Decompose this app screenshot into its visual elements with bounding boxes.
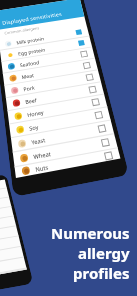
staticText: Pork: [23, 84, 36, 92]
staticText: Milk protein: [16, 35, 45, 45]
button[interactable]: Meat: [3, 59, 98, 85]
staticText: Honey: [27, 108, 44, 118]
button[interactable]: Honey: [7, 94, 107, 123]
staticText: Meat: [21, 71, 35, 80]
button[interactable]: Pork: [4, 70, 101, 97]
staticText: allergy: [78, 243, 130, 263]
staticText: Yeast: [31, 136, 46, 146]
button[interactable]: Wheat: [13, 134, 117, 166]
button[interactable]: Seafood: [1, 47, 95, 73]
staticText: Beef: [25, 96, 38, 105]
staticText: Numerous: [51, 223, 130, 243]
button[interactable]: Yeast: [11, 120, 114, 151]
staticText: profiles: [73, 263, 130, 283]
staticText: Seafood: [19, 59, 40, 68]
staticText: Soy: [29, 123, 39, 132]
button[interactable]: Displayed sensitivities: [0, 0, 84, 30]
button[interactable]: Milk protein: [0, 26, 89, 50]
staticText: Egg protein: [18, 46, 46, 57]
button[interactable]: Egg protein: [0, 36, 92, 61]
button[interactable]: Nuts: [15, 148, 120, 178]
button[interactable]: Soy: [9, 107, 110, 137]
button[interactable]: Beef: [6, 82, 104, 110]
staticText: Displayed sensitivities: [2, 10, 63, 26]
staticText: Nuts: [35, 162, 49, 173]
staticText: Common allergens: [4, 26, 40, 36]
staticText: Wheat: [33, 149, 51, 160]
